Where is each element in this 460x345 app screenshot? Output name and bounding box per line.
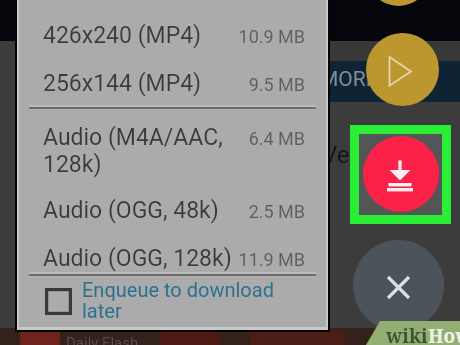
staticText: 6.4 MB <box>177 128 305 149</box>
staticText: 128k) <box>43 151 102 178</box>
staticText: wiki <box>386 323 428 345</box>
button[interactable]: Enqueue to download later <box>28 278 308 327</box>
staticText: 9.5 MB <box>177 74 305 95</box>
staticText: 11.9 MB <box>177 249 305 270</box>
button[interactable]: Download <box>363 136 439 212</box>
staticText: Daily Flash <box>66 334 139 345</box>
button[interactable]: Close <box>353 240 444 331</box>
staticText: 256x144 (MP4) <box>43 70 202 97</box>
staticText: Enqueue to download later <box>82 278 282 323</box>
staticText: Audio (M4A/AAC, <box>43 124 223 151</box>
staticText: Ve y <box>322 141 367 169</box>
button[interactable]: Play <box>366 33 439 106</box>
staticText: MORE <box>320 67 378 92</box>
staticText: Audio (OGG, 128k) <box>43 245 232 272</box>
staticText: 426x240 (MP4) <box>43 22 202 49</box>
staticText: 10.9 MB <box>177 26 305 47</box>
staticText: How <box>428 323 460 345</box>
staticText: 2.5 MB <box>177 201 305 222</box>
staticText: Audio (OGG, 48k) <box>43 197 219 224</box>
